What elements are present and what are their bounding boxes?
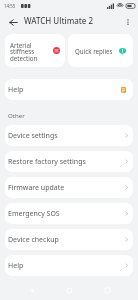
button[interactable]: Arterial stiffness detection <box>5 34 65 67</box>
staticText: Device checkup <box>8 235 125 245</box>
staticText: Quick replies <box>75 47 119 55</box>
staticText: Help <box>8 85 121 95</box>
button[interactable]: More options <box>120 14 135 29</box>
staticText: 14:55 <box>4 3 16 9</box>
staticText: Firmware update <box>8 183 125 193</box>
button[interactable]: Back <box>5 14 21 30</box>
staticText: WATCH Ultimate 2 <box>24 15 94 26</box>
button[interactable]: Firmware update <box>5 177 133 198</box>
button[interactable]: Emergency SOS <box>5 203 133 224</box>
button[interactable]: Device checkup <box>5 229 133 250</box>
staticText: Emergency SOS <box>8 209 125 219</box>
button[interactable]: Restore factory settings <box>5 151 133 172</box>
staticText: Other <box>8 111 25 119</box>
button[interactable]: Device settings <box>5 125 133 146</box>
staticText: Arterial stiffness detection <box>10 41 53 63</box>
button[interactable]: Help <box>5 255 133 276</box>
button[interactable]: Quick replies <box>68 34 133 67</box>
button[interactable]: Help <box>5 79 133 100</box>
staticText: Device settings <box>8 131 125 141</box>
staticText: Help <box>8 261 125 271</box>
staticText: Restore factory settings <box>8 157 125 167</box>
